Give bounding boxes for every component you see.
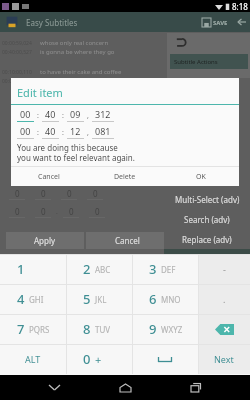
button[interactable]: 6: [132, 284, 198, 314]
staticText: Apply: [34, 235, 56, 246]
staticText: :: [37, 128, 39, 138]
staticText: Multi-Select (adv): [175, 194, 240, 205]
staticText: OK: [196, 172, 206, 182]
button[interactable]: Space: [132, 344, 198, 374]
button[interactable]: Multi-Select (adv): [164, 189, 250, 209]
staticText: 00:00:04,271: [2, 78, 40, 85]
button[interactable]: Replace (adv): [164, 229, 250, 249]
button[interactable]: 2: [66, 254, 132, 284]
button[interactable]: Backspace: [198, 314, 250, 344]
staticText: Delete: [114, 172, 136, 182]
staticText: Replace (adv): [182, 234, 232, 245]
staticText: 5: [83, 290, 91, 308]
staticText: 7: [17, 320, 25, 338]
staticText: 00:10:00,110: [2, 69, 40, 76]
staticText: 6: [149, 290, 157, 308]
staticText: +: [95, 352, 102, 367]
button[interactable]: Undo: [232, 12, 250, 32]
staticText: 40: [45, 125, 56, 137]
staticText: Easy Subtitles: [26, 17, 78, 28]
button[interactable]: Apply: [6, 232, 84, 249]
staticText: Search (adv): [184, 214, 230, 225]
button[interactable]: 8: [66, 314, 132, 344]
staticText: DEF: [161, 264, 176, 275]
staticText: when it's over!: [40, 77, 81, 85]
staticText: 12: [70, 125, 81, 137]
staticText: 0: [83, 350, 91, 368]
staticText: 0: [93, 188, 98, 199]
staticText: :: [62, 111, 64, 121]
staticText: You are doing this because you want to f…: [17, 142, 135, 163]
staticText: ,: [87, 111, 89, 121]
button[interactable]: 1: [0, 254, 66, 284]
staticText: ALT: [25, 353, 41, 365]
staticText: to have their cake and coffee: [40, 68, 122, 76]
staticText: GHI: [29, 294, 44, 305]
staticText: 081: [95, 125, 111, 137]
staticText: whose only real concern: [40, 39, 109, 47]
staticText: SAVE: [213, 19, 228, 27]
button[interactable]: 7: [0, 314, 66, 344]
staticText: 09: [70, 108, 81, 120]
staticText: 0: [41, 206, 46, 217]
button[interactable]: Cancel: [11, 167, 87, 186]
staticText: ABC: [95, 264, 111, 275]
button[interactable]: 9: [132, 314, 198, 344]
staticText: 0: [15, 206, 20, 217]
staticText: 00:00:59,024: [2, 40, 40, 47]
staticText: 00: [20, 108, 31, 120]
staticText: -: [223, 263, 226, 275]
staticText: :: [37, 111, 39, 121]
staticText: 40: [45, 108, 56, 120]
staticText: ,: [87, 128, 89, 138]
staticText: Subtitle Actions: [174, 58, 218, 66]
staticText: 0: [15, 188, 20, 199]
staticText: Cancel: [38, 172, 60, 182]
staticText: 0: [69, 206, 74, 217]
button[interactable]: 3: [132, 254, 198, 284]
staticText: 4: [17, 290, 25, 308]
button[interactable]: Undo: [171, 33, 191, 52]
button[interactable]: SAVE: [198, 15, 232, 30]
button[interactable]: Subtitle Actions: [170, 54, 248, 69]
button[interactable]: 0: [66, 344, 132, 374]
staticText: 3: [149, 260, 157, 278]
staticText: 0: [41, 188, 46, 199]
staticText: Next: [214, 353, 234, 365]
staticText: 2: [83, 260, 91, 278]
staticText: 0: [67, 188, 72, 199]
staticText: 00: [20, 125, 31, 137]
staticText: 8:18: [232, 1, 248, 12]
staticText: .: [223, 293, 226, 305]
button[interactable]: 4: [0, 284, 66, 314]
staticText: 0: [95, 206, 100, 217]
button[interactable]: OK: [163, 167, 239, 186]
staticText: 00:40:00,527: [2, 49, 40, 56]
staticText: JKL: [95, 294, 107, 305]
staticText: PQRS: [29, 324, 50, 335]
button[interactable]: 5: [66, 284, 132, 314]
staticText: 312: [95, 108, 111, 120]
staticText: MNO: [161, 294, 181, 305]
button[interactable]: ALT: [0, 344, 66, 374]
staticText: 8: [83, 320, 91, 338]
button[interactable]: Home: [108, 375, 142, 400]
staticText: is gonna be where they go: [40, 48, 115, 56]
staticText: 1: [17, 260, 25, 278]
button[interactable]: Search (adv): [164, 209, 250, 229]
staticText: Cancel: [115, 235, 140, 246]
staticText: 9: [149, 320, 157, 338]
button[interactable]: Cancel: [86, 232, 168, 249]
button[interactable]: Delete: [87, 167, 163, 186]
staticText: Edit item: [17, 85, 63, 100]
button[interactable]: Recents: [179, 375, 213, 400]
other: Space: [158, 357, 172, 362]
button[interactable]: Next: [198, 344, 250, 374]
other: Backspace: [215, 324, 234, 335]
staticText: WXYZ: [161, 324, 183, 335]
button[interactable]: Back: [37, 375, 71, 400]
staticText: :: [62, 128, 64, 138]
